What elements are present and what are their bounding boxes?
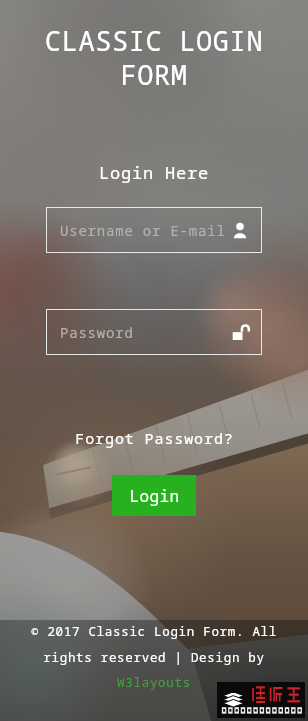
button[interactable]: Username or E-mail (46, 207, 262, 253)
button[interactable]: Password (46, 309, 262, 355)
staticText: Username or E-mail (60, 221, 226, 240)
button[interactable]: Login (112, 475, 196, 516)
button[interactable]: Forgot Password? (0, 426, 308, 450)
staticText: Password (60, 323, 134, 342)
button[interactable]: W3layouts (117, 674, 191, 691)
staticText: W3layouts (117, 674, 191, 691)
button[interactable]: MobanWang watermark (217, 682, 305, 718)
other: Show password (230, 322, 250, 342)
staticText: Login Here (0, 161, 308, 184)
staticText: © 2017 Classic Login Form. All rights re… (10, 623, 298, 666)
staticText: Login (129, 485, 180, 507)
other: User account (230, 220, 250, 240)
staticText: Forgot Password? (75, 428, 234, 448)
staticText: CLASSIC LOGIN FORM (8, 22, 300, 93)
